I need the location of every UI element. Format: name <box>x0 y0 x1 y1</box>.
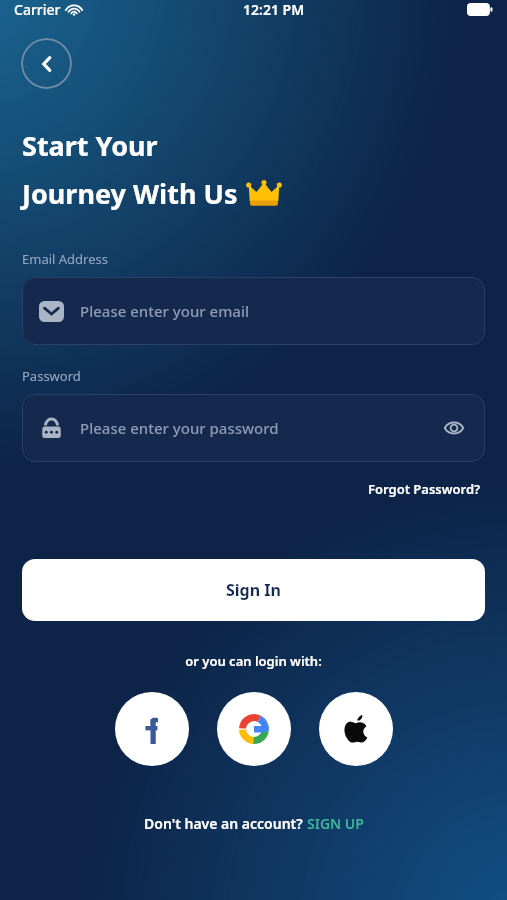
staticText: Journey With Us <box>22 175 238 212</box>
button[interactable]: Please enter your email <box>22 277 485 345</box>
staticText: or you can login with: <box>0 652 507 670</box>
button[interactable]: Forgot Password? <box>364 476 485 502</box>
button[interactable]: Sign in with Apple <box>319 692 393 766</box>
staticText: Please enter your password <box>80 418 440 438</box>
staticText: 12:21 PM <box>243 0 305 19</box>
staticText: Password <box>22 367 81 385</box>
staticText: Forgot Password? <box>368 480 481 498</box>
button[interactable]: Show password <box>440 414 468 442</box>
button[interactable]: Back <box>21 38 72 89</box>
button[interactable]: Sign in with Google <box>217 692 291 766</box>
staticText: Email Address <box>22 250 108 268</box>
staticText: Start Your <box>22 127 158 164</box>
button[interactable]: Sign in with Facebook <box>115 692 189 766</box>
staticText: Carrier <box>14 0 61 19</box>
staticText: SIGN UP <box>307 814 364 833</box>
staticText: Sign In <box>226 579 281 601</box>
button[interactable]: SIGN UP <box>307 814 364 833</box>
button[interactable]: Please enter your password <box>22 394 485 462</box>
staticText: Don't have an account? <box>144 814 307 833</box>
button[interactable]: Sign In <box>22 559 485 621</box>
staticText: Please enter your email <box>80 301 468 321</box>
